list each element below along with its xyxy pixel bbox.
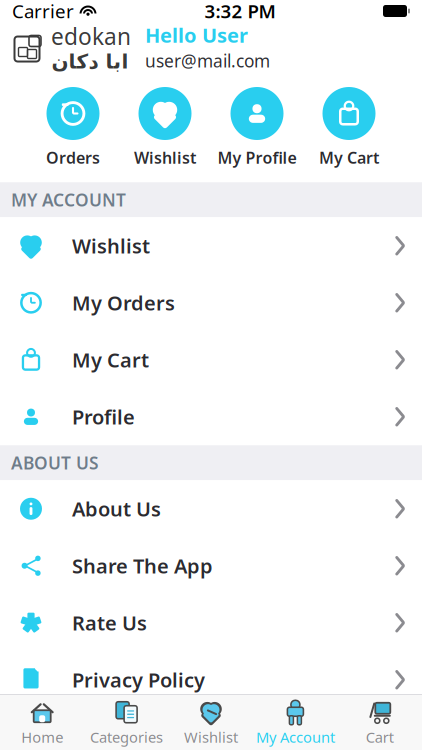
staticText: Privacy Policy	[72, 666, 205, 693]
staticText: edokan	[51, 21, 131, 51]
staticText: user@mail.com	[145, 49, 270, 72]
button[interactable]: Profile	[0, 388, 422, 445]
staticText: My Cart	[319, 147, 379, 168]
button[interactable]: My Orders	[0, 274, 422, 331]
staticText: Wishlist	[72, 232, 150, 259]
staticText: Home	[21, 727, 63, 747]
button[interactable]: Cart	[338, 694, 422, 750]
staticText: Profile	[72, 403, 135, 430]
button[interactable]: My Cart	[0, 331, 422, 388]
button[interactable]: Privacy Policy	[0, 651, 422, 708]
staticText: Carrier	[12, 0, 74, 23]
staticText: Categories	[90, 727, 163, 747]
staticText: Cart	[366, 727, 394, 747]
staticText: Hello User	[145, 22, 248, 48]
button[interactable]: Home	[0, 694, 84, 750]
staticText: Wishlist	[134, 147, 196, 168]
button[interactable]: My Profile	[211, 83, 303, 172]
button[interactable]: Wishlist	[169, 694, 253, 750]
button[interactable]: About Us	[0, 480, 422, 537]
staticText: 3:32 PM	[204, 0, 275, 23]
button[interactable]: Share The App	[0, 537, 422, 594]
staticText: My Orders	[72, 289, 175, 316]
button[interactable]: Wishlist	[0, 217, 422, 274]
button[interactable]: My Cart	[303, 83, 395, 172]
staticText: About Us	[72, 495, 161, 522]
staticText: ABOUT US	[11, 451, 99, 474]
staticText: My Account	[256, 727, 335, 747]
staticText: Wishlist	[184, 727, 238, 747]
button[interactable]: Categories	[84, 694, 169, 750]
staticText: Rate Us	[72, 609, 147, 636]
button[interactable]: Wishlist	[119, 83, 211, 172]
staticText: My Cart	[72, 346, 149, 373]
button[interactable]: Rate Us	[0, 594, 422, 651]
button[interactable]: Orders	[27, 83, 119, 172]
staticText: ابا دکان	[51, 50, 128, 73]
staticText: MY ACCOUNT	[11, 188, 126, 211]
button[interactable]: My Account	[253, 694, 338, 750]
staticText: Orders	[46, 147, 100, 168]
staticText: My Profile	[217, 147, 296, 168]
staticText: Share The App	[72, 552, 213, 579]
